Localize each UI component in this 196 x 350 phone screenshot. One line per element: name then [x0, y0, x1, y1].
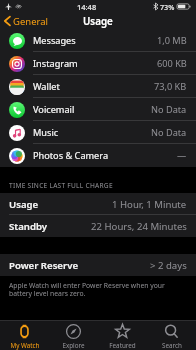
staticText: My Watch: [10, 341, 40, 350]
button[interactable]: Search: [147, 320, 196, 350]
button[interactable]: Music: [0, 121, 196, 144]
staticText: No Data: [151, 103, 187, 116]
staticText: Apple Watch will enter Power Reserve whe…: [9, 281, 187, 298]
staticText: Wallet: [33, 80, 154, 93]
button[interactable]: My Watch: [0, 320, 49, 350]
staticText: —: [177, 149, 187, 162]
staticText: Messages: [33, 34, 157, 47]
staticText: Usage: [83, 15, 113, 28]
staticText: 22 Hours, 24 Minutes: [91, 220, 187, 233]
staticText: 600 KB: [157, 57, 187, 70]
button[interactable]: Featured: [98, 320, 147, 350]
staticText: Usage: [9, 198, 112, 211]
button[interactable]: Standby: [0, 215, 196, 237]
staticText: No Data: [151, 126, 187, 139]
staticText: 1,0 MB: [157, 34, 187, 47]
staticText: 14:48: [77, 2, 97, 12]
button[interactable]: Instagram: [0, 52, 196, 75]
staticText: 73,0 KB: [154, 80, 187, 93]
other: Back: [4, 16, 11, 26]
staticText: Power Reserve: [9, 259, 150, 272]
button[interactable]: Explore: [49, 320, 98, 350]
staticText: Photos & Camera: [33, 149, 177, 162]
staticText: Voicemail: [33, 103, 151, 116]
staticText: Search: [162, 341, 182, 350]
button[interactable]: Photos & Camera: [0, 144, 196, 167]
staticText: Standby: [9, 220, 91, 233]
staticText: 73%: [160, 2, 175, 12]
button[interactable]: Back: [0, 13, 55, 29]
staticText: Explore: [62, 341, 85, 350]
button[interactable]: Power Reserve: [0, 254, 196, 276]
button[interactable]: Messages: [0, 29, 196, 52]
staticText: Music: [33, 126, 151, 139]
button[interactable]: Usage: [0, 193, 196, 215]
button[interactable]: Wallet: [0, 75, 196, 98]
staticText: 1 Hour, 1 Minute: [112, 198, 187, 211]
staticText: TIME SINCE LAST FULL CHARGE: [9, 181, 113, 190]
staticText: Featured: [109, 341, 136, 350]
staticText: Instagram: [33, 57, 157, 70]
button[interactable]: Voicemail: [0, 98, 196, 121]
staticText: > 2 days: [150, 259, 187, 272]
staticText: General: [13, 15, 49, 28]
